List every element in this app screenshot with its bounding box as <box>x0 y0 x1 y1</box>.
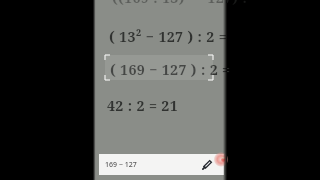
staticText: 42 : 2 = 21 <box>107 96 179 115</box>
staticText: 169 − 127 <box>105 160 137 170</box>
other: Edit <box>202 159 213 170</box>
button[interactable]: Selected expression <box>105 55 213 80</box>
staticText: ( 13² − 127 ) : 2 = <box>109 27 228 46</box>
staticText: ((169 : 13)² − 127) : <box>112 0 248 7</box>
button[interactable]: 169 − 127 <box>99 154 224 175</box>
staticText: ( 169 − 127 ) : 2 = <box>110 60 231 79</box>
